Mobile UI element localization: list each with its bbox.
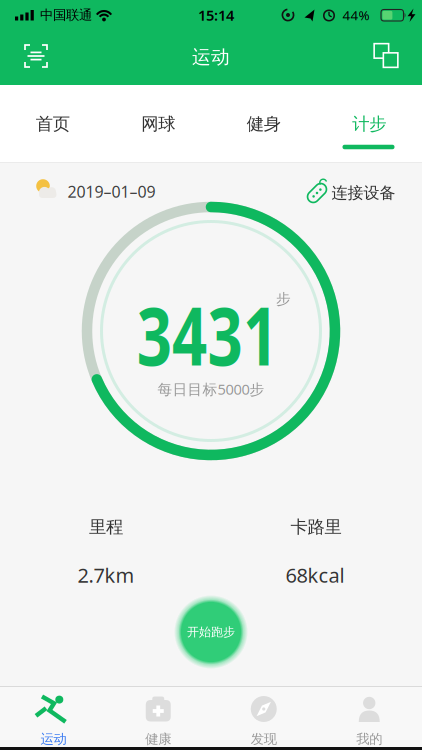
- staticText: 发现: [251, 731, 277, 747]
- staticText: 连接设备: [331, 183, 395, 203]
- staticText: 步: [276, 290, 291, 308]
- staticText: 2.7km: [77, 562, 134, 588]
- staticText: 开始跑步: [187, 625, 235, 639]
- staticText: 每日目标5000步: [157, 379, 264, 399]
- staticText: 运动: [192, 45, 230, 68]
- staticText: 健康: [145, 731, 171, 747]
- staticText: 健身: [247, 113, 281, 135]
- staticText: 3431: [115, 281, 299, 388]
- staticText: 44%: [342, 6, 369, 24]
- staticText: 2019–01–09: [67, 181, 155, 202]
- staticText: 卡路里: [290, 516, 341, 538]
- staticText: 网球: [141, 113, 175, 135]
- staticText: 68kcal: [285, 562, 344, 588]
- staticText: 运动: [40, 731, 66, 747]
- staticText: 计步: [352, 113, 386, 135]
- staticText: 我的: [356, 731, 382, 747]
- staticText: 15:14: [198, 5, 234, 25]
- staticText: 中国联通: [40, 7, 92, 23]
- staticText: 里程: [89, 516, 123, 538]
- staticText: 首页: [36, 113, 70, 135]
